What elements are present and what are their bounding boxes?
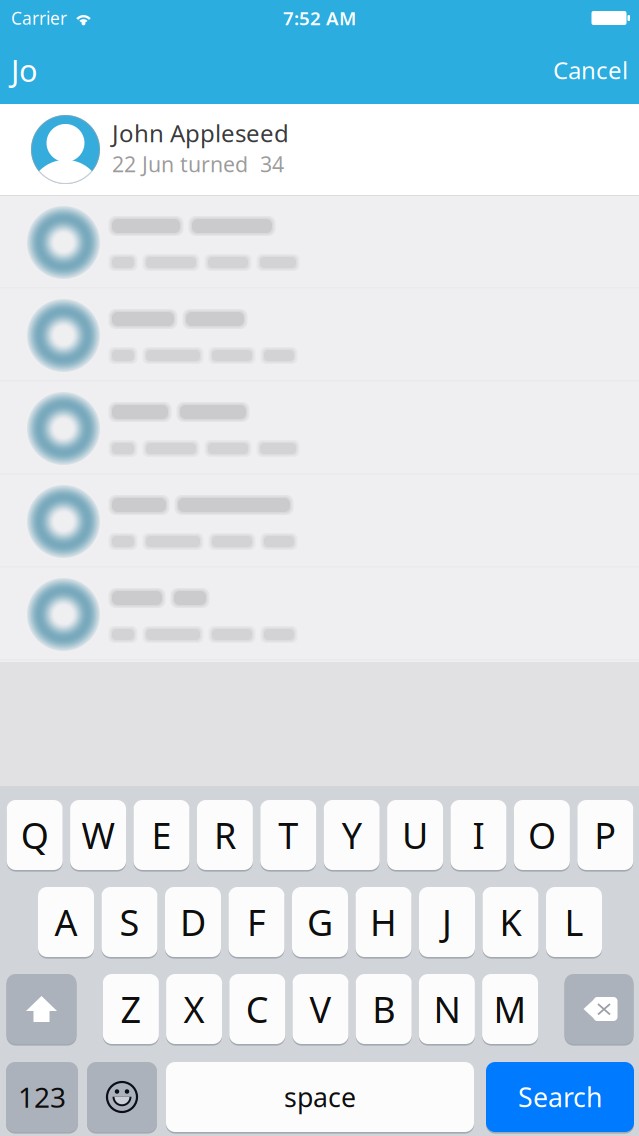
staticText: J [442,898,452,946]
staticText: O [528,811,556,859]
button[interactable]: B [356,973,412,1045]
button[interactable]: John Appleseed [0,104,639,195]
button[interactable]: T [260,799,316,871]
staticText: 123 [18,1078,66,1116]
button[interactable]: U [387,799,443,871]
button[interactable]: Delete [564,973,633,1045]
staticText: S [119,898,139,946]
staticText: I [472,811,484,859]
button[interactable]: L [546,886,602,958]
button[interactable]: P [577,799,633,871]
button[interactable]: space [166,1061,474,1133]
staticText: Carrier [11,6,67,29]
staticText: John Appleseed [112,117,289,149]
staticText: Cancel [553,54,628,86]
staticText: R [214,811,236,859]
button[interactable]: Z [103,973,159,1045]
staticText: Search [518,1079,602,1115]
button[interactable]: O [514,799,570,871]
button[interactable]: Y [324,799,380,871]
button[interactable]: Shift [6,973,76,1045]
staticText: W [82,811,115,859]
button[interactable]: A [38,886,94,958]
staticText: Jo [11,50,38,90]
staticText: space [284,1079,356,1115]
button[interactable]: W [70,799,126,871]
staticText: P [594,811,616,859]
staticText: Q [21,811,49,859]
staticText: Y [342,811,362,859]
staticText: V [309,985,331,1033]
button[interactable]: K [482,886,538,958]
button[interactable]: H [355,886,411,958]
staticText: K [499,898,521,946]
staticText: U [402,811,428,859]
staticText: Z [120,985,141,1033]
staticText: E [151,811,171,859]
button[interactable]: R [197,799,253,871]
staticText: 22 Jun turned 34 [112,150,284,178]
button[interactable]: I [450,799,506,871]
button[interactable]: X [166,973,222,1045]
button[interactable]: 123 [6,1061,78,1133]
button[interactable]: M [482,973,538,1045]
staticText: C [246,985,269,1033]
staticText: N [433,985,460,1033]
staticText: M [494,985,527,1033]
staticText: T [278,811,298,859]
staticText: X [184,985,205,1033]
button[interactable]: N [419,973,475,1045]
button[interactable]: V [292,973,348,1045]
button[interactable]: D [165,886,221,958]
button[interactable]: F [228,886,284,958]
button[interactable]: E [133,799,189,871]
staticText: 7:52 AM [283,6,356,30]
button[interactable]: Search [486,1061,634,1133]
staticText: L [564,898,583,946]
button[interactable]: Emoji keyboard [87,1061,157,1133]
staticText: B [372,985,395,1033]
staticText: H [370,898,397,946]
staticText: D [180,898,206,946]
staticText: F [247,898,266,946]
button[interactable]: Jo [8,40,238,100]
staticText: G [307,898,333,946]
button[interactable]: S [101,886,157,958]
staticText: A [54,898,77,946]
button[interactable]: G [292,886,348,958]
button[interactable]: Cancel [549,44,632,96]
button[interactable]: C [229,973,285,1045]
button[interactable]: Q [7,799,63,871]
button[interactable]: J [419,886,475,958]
